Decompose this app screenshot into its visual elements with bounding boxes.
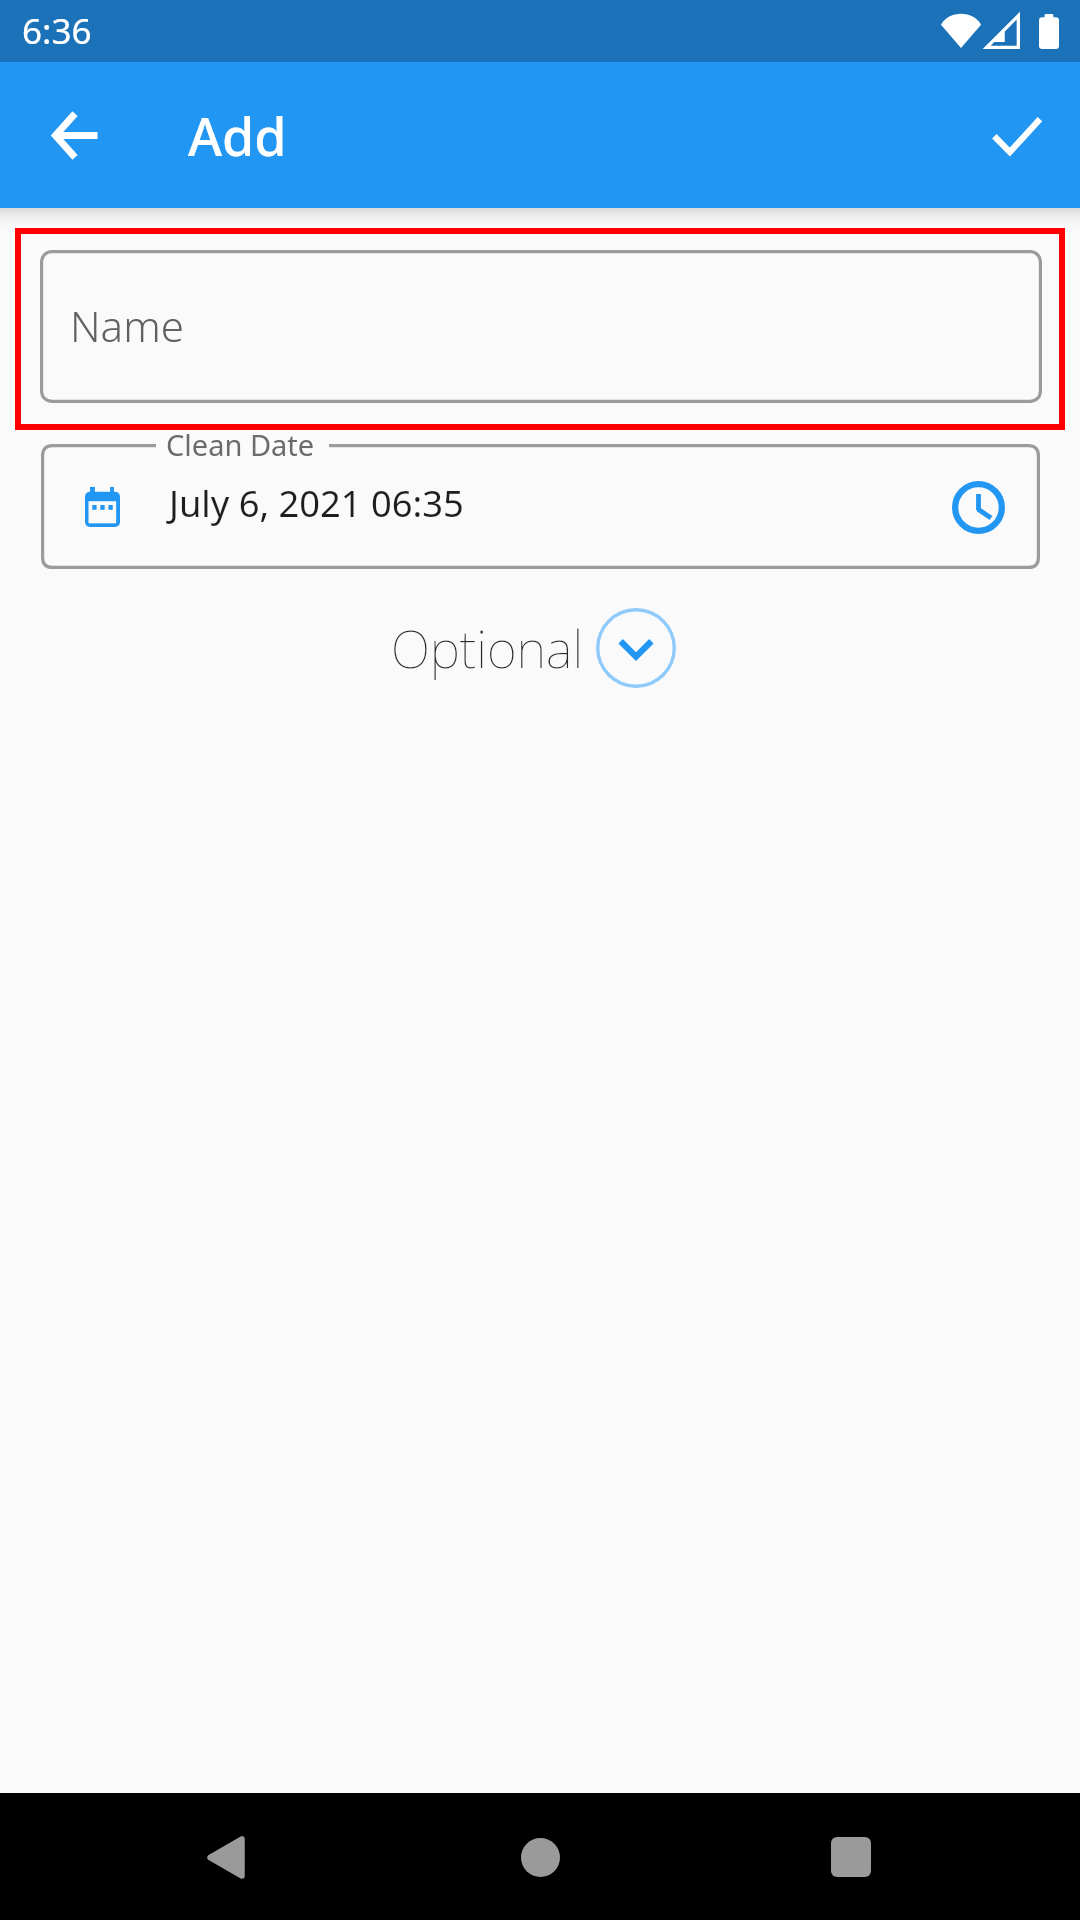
button[interactable]: Save [970,88,1064,182]
staticText: July 6, 2021 06:35 [169,478,464,527]
button[interactable]: Clean Date [41,444,1040,569]
button[interactable]: Expand optional fields [596,608,676,688]
staticText: 6:36 [22,7,92,55]
button[interactable]: Home [485,1802,595,1912]
staticText: Add [188,100,287,171]
staticText: Clean Date [166,425,315,464]
staticText: Name [70,297,184,354]
staticText: Optional [391,613,584,683]
button[interactable]: Pick time [934,463,1022,551]
button[interactable]: Back [171,1802,281,1912]
button[interactable]: Navigate up [29,88,123,182]
button[interactable]: Recent apps [796,1802,906,1912]
button[interactable]: Name [40,250,1042,403]
